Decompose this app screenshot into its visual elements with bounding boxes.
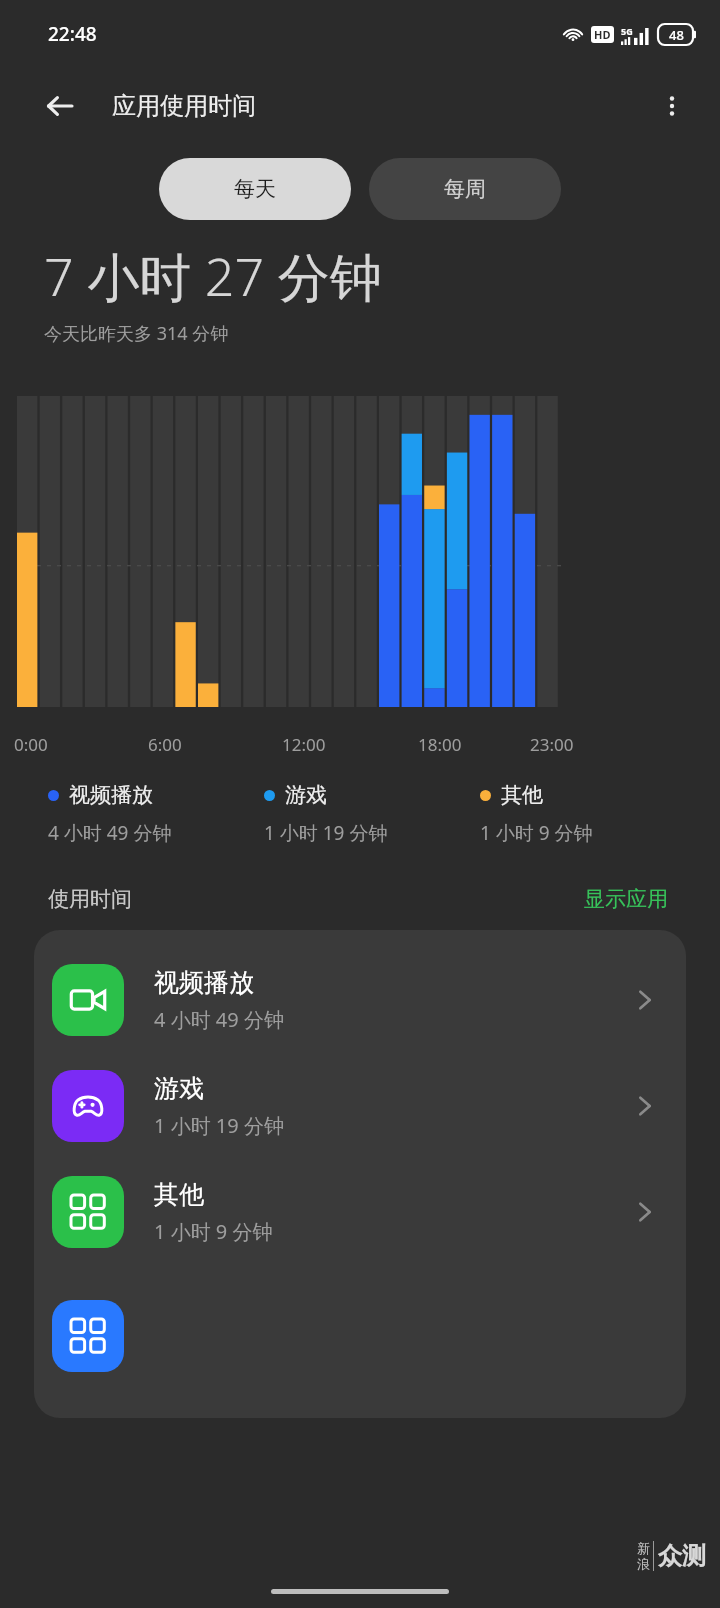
staticText: HD [594, 27, 611, 42]
staticText: 4 小时 49 分钟 [154, 1006, 284, 1033]
button[interactable]: 游戏 [34, 1064, 686, 1148]
staticText: 6:00 [148, 733, 182, 756]
staticText: 4 小时 49 分钟 [48, 820, 172, 846]
staticText: 应用使用时间 [112, 91, 256, 121]
staticText: 游戏 [285, 782, 327, 808]
button[interactable]: 其他 [34, 1170, 686, 1254]
staticText: 12:00 [282, 733, 326, 756]
staticText: 22:48 [48, 21, 97, 47]
staticText: 23:00 [530, 733, 574, 756]
button[interactable] [34, 1294, 686, 1378]
staticText: 7 小时 27 分钟 [44, 240, 382, 311]
staticText: 5G [621, 25, 633, 37]
staticText: 1 小时 19 分钟 [154, 1112, 284, 1139]
staticText: 1 小时 19 分钟 [264, 820, 388, 846]
staticText: 新 [637, 1540, 650, 1556]
staticText: 浪 [637, 1556, 650, 1572]
button[interactable]: 每周 [369, 158, 561, 220]
staticText: 今天比昨天多 314 分钟 [44, 321, 229, 346]
staticText: 1 小时 9 分钟 [480, 820, 593, 846]
button[interactable]: Back [34, 80, 86, 132]
staticText: 其他 [501, 782, 543, 808]
button[interactable]: 显示应用 [580, 882, 672, 916]
staticText: 48 [669, 26, 684, 44]
staticText: 每周 [444, 176, 486, 202]
staticText: 其他 [154, 1179, 204, 1210]
staticText: 0:00 [14, 733, 48, 756]
staticText: 众测 [658, 1541, 706, 1571]
button[interactable]: 每天 [159, 158, 351, 220]
staticText: 视频播放 [69, 782, 153, 808]
staticText: 视频播放 [154, 967, 254, 998]
staticText: 1 小时 9 分钟 [154, 1218, 273, 1245]
staticText: 游戏 [154, 1073, 204, 1104]
staticText: 每天 [234, 176, 276, 202]
button[interactable]: More options [646, 80, 698, 132]
staticText: 使用时间 [48, 886, 132, 912]
button[interactable]: 视频播放 [34, 958, 686, 1042]
staticText: 显示应用 [584, 886, 668, 912]
staticText: 18:00 [418, 733, 462, 756]
